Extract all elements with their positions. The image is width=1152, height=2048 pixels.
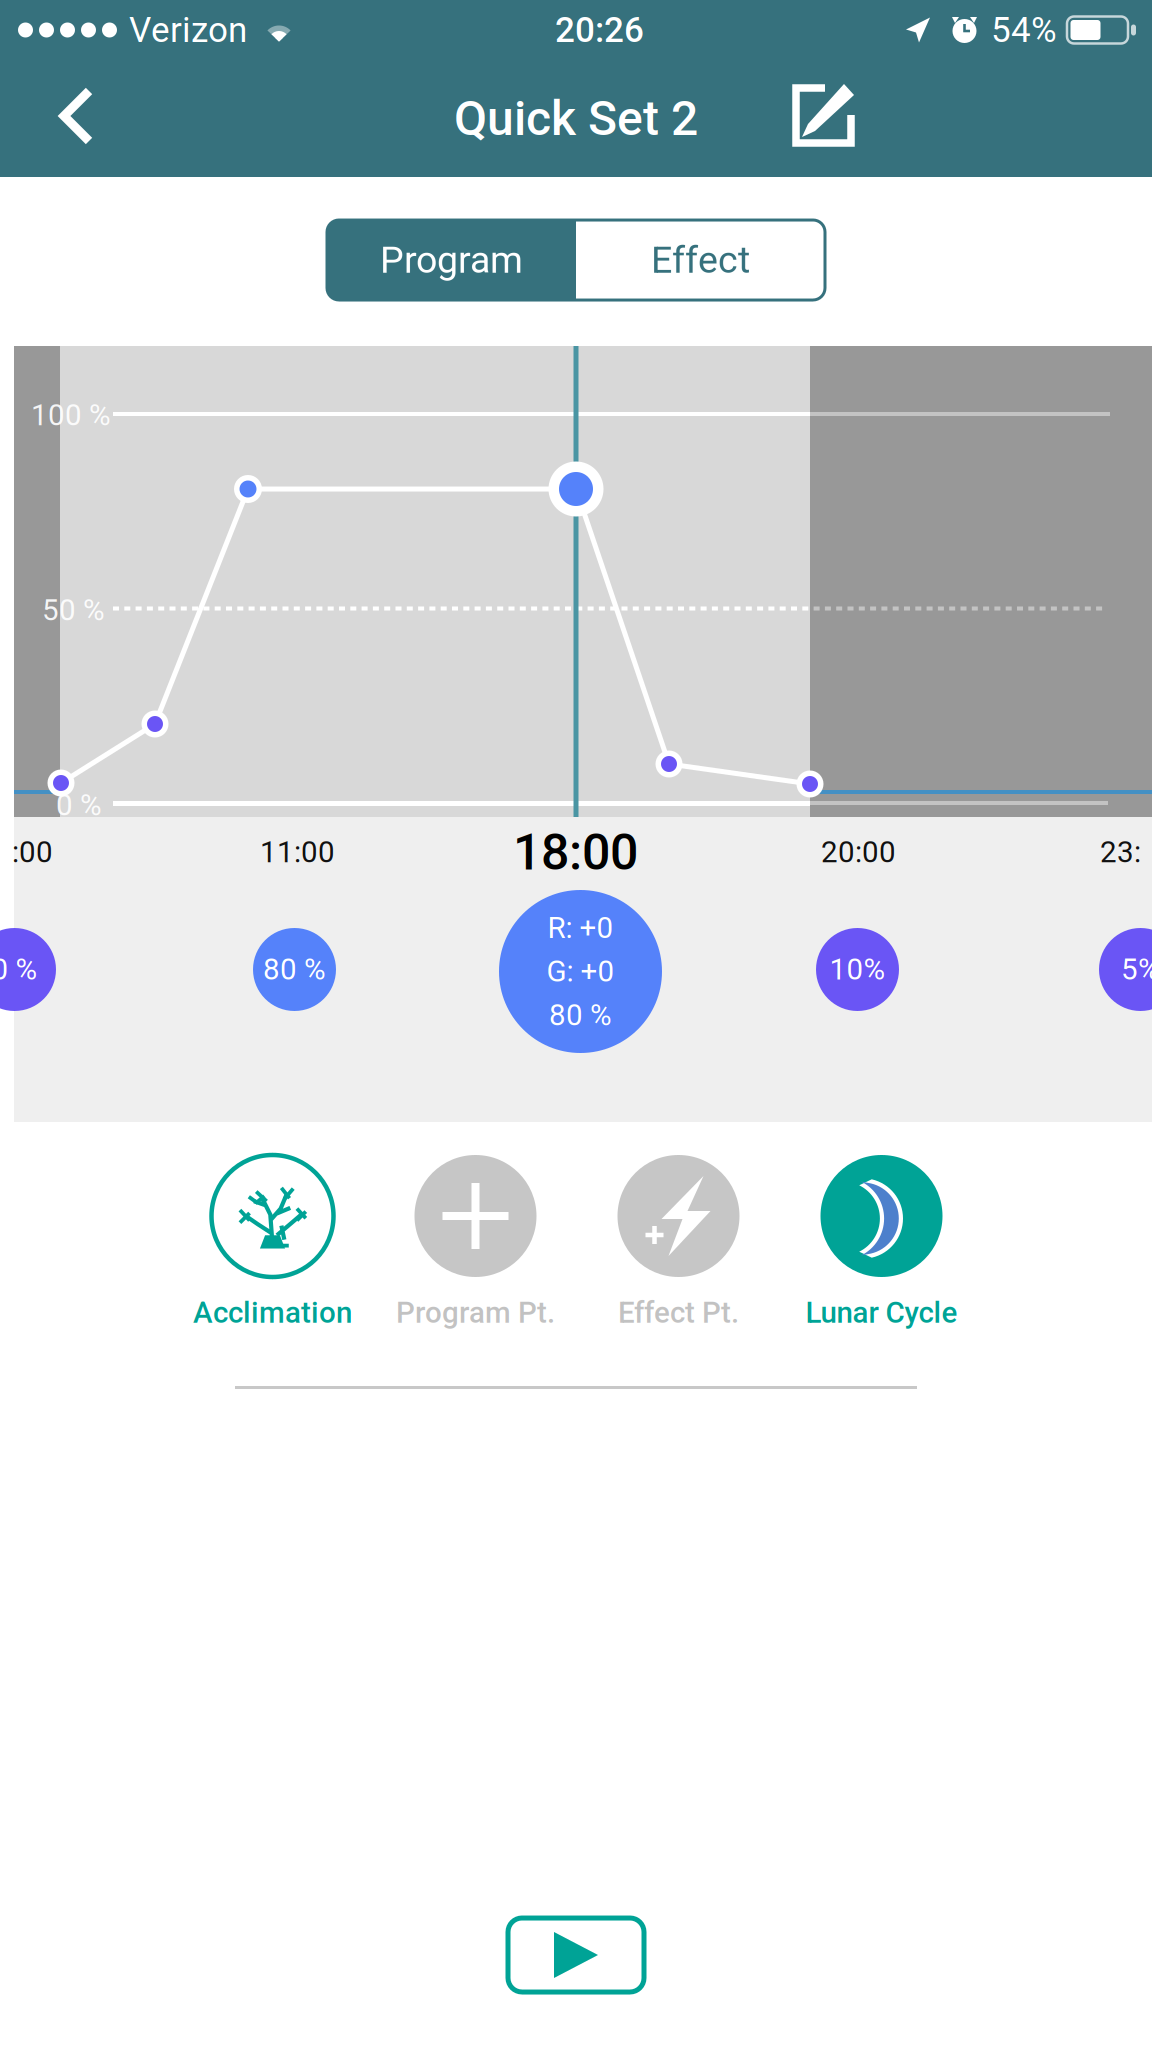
staticText: 100 % [31, 398, 111, 433]
staticText: 50 % [42, 593, 105, 628]
staticText: 10% [829, 952, 885, 987]
button[interactable]: Back [30, 68, 122, 164]
staticText: Quick Set 2 [454, 90, 698, 147]
staticText: 80 % [549, 998, 612, 1032]
staticText: G: +0 [546, 954, 614, 989]
button[interactable]: Program Pt. [374, 1155, 577, 1330]
staticText: 80 % [263, 952, 326, 987]
staticText: 11:00 [260, 835, 335, 870]
staticText: 23: [1100, 835, 1141, 870]
button[interactable]: Program [327, 220, 576, 300]
staticText: Acclimation [193, 1295, 352, 1330]
staticText: Effect [651, 238, 750, 282]
staticText: Program Pt. [396, 1295, 555, 1330]
button[interactable]: Lunar Cycle [780, 1155, 983, 1330]
button[interactable]: Acclimation [171, 1155, 374, 1330]
staticText: 18:00 [513, 823, 638, 882]
button[interactable]: Effect Pt. [577, 1155, 780, 1330]
staticText: 0 % [0, 952, 37, 987]
staticText: 5% [1121, 952, 1152, 987]
staticText: 20:00 [821, 835, 896, 870]
staticText: :00 [12, 835, 53, 870]
staticText: Verizon [129, 9, 247, 50]
button[interactable]: Edit [776, 68, 872, 164]
staticText: 0 % [56, 788, 102, 823]
staticText: Lunar Cycle [805, 1295, 957, 1330]
staticText: 20:26 [555, 9, 644, 50]
staticText: Effect Pt. [618, 1295, 739, 1330]
button[interactable]: Play [508, 1918, 644, 1992]
staticText: R: +0 [547, 911, 613, 945]
staticText: 54% [991, 9, 1057, 50]
button[interactable]: Effect [576, 220, 825, 300]
staticText: Program [380, 238, 523, 282]
